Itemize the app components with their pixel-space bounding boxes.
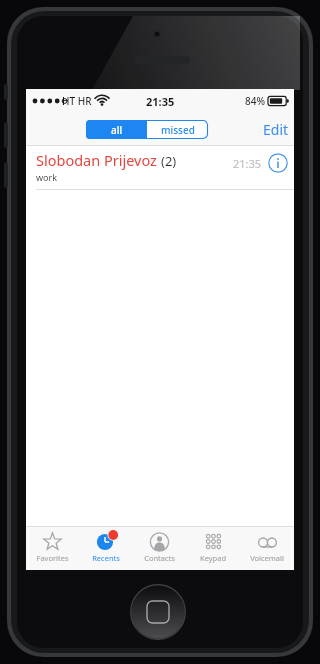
staticText: 21:35 <box>233 156 262 171</box>
button[interactable]: Call details <box>268 153 288 173</box>
staticText: missed <box>161 123 195 137</box>
staticText: 84% <box>245 94 265 108</box>
staticText: HT HR <box>62 94 92 108</box>
staticText: (2) <box>161 152 177 170</box>
staticText: work <box>36 171 58 183</box>
staticText: Recents <box>92 553 120 563</box>
button[interactable]: Favorites <box>26 527 79 570</box>
staticText: all <box>111 123 123 137</box>
staticText: Contacts <box>144 553 175 563</box>
staticText: 21:35 <box>146 94 175 109</box>
button[interactable]: Recents <box>79 527 132 570</box>
button[interactable]: Edit <box>263 120 289 139</box>
button[interactable]: Voicemail <box>240 527 294 570</box>
staticText: Favorites <box>36 553 69 563</box>
button[interactable]: all <box>86 120 147 139</box>
staticText: Keypad <box>200 553 226 563</box>
button[interactable]: missed <box>147 120 208 139</box>
staticText: Edit <box>263 120 289 139</box>
staticText: Slobodan Prijevoz <box>36 150 157 170</box>
staticText: Voicemail <box>250 553 284 563</box>
button[interactable]: Slobodan Prijevoz <box>26 146 294 190</box>
button[interactable]: Contacts <box>132 527 186 570</box>
button[interactable]: Keypad <box>186 527 240 570</box>
